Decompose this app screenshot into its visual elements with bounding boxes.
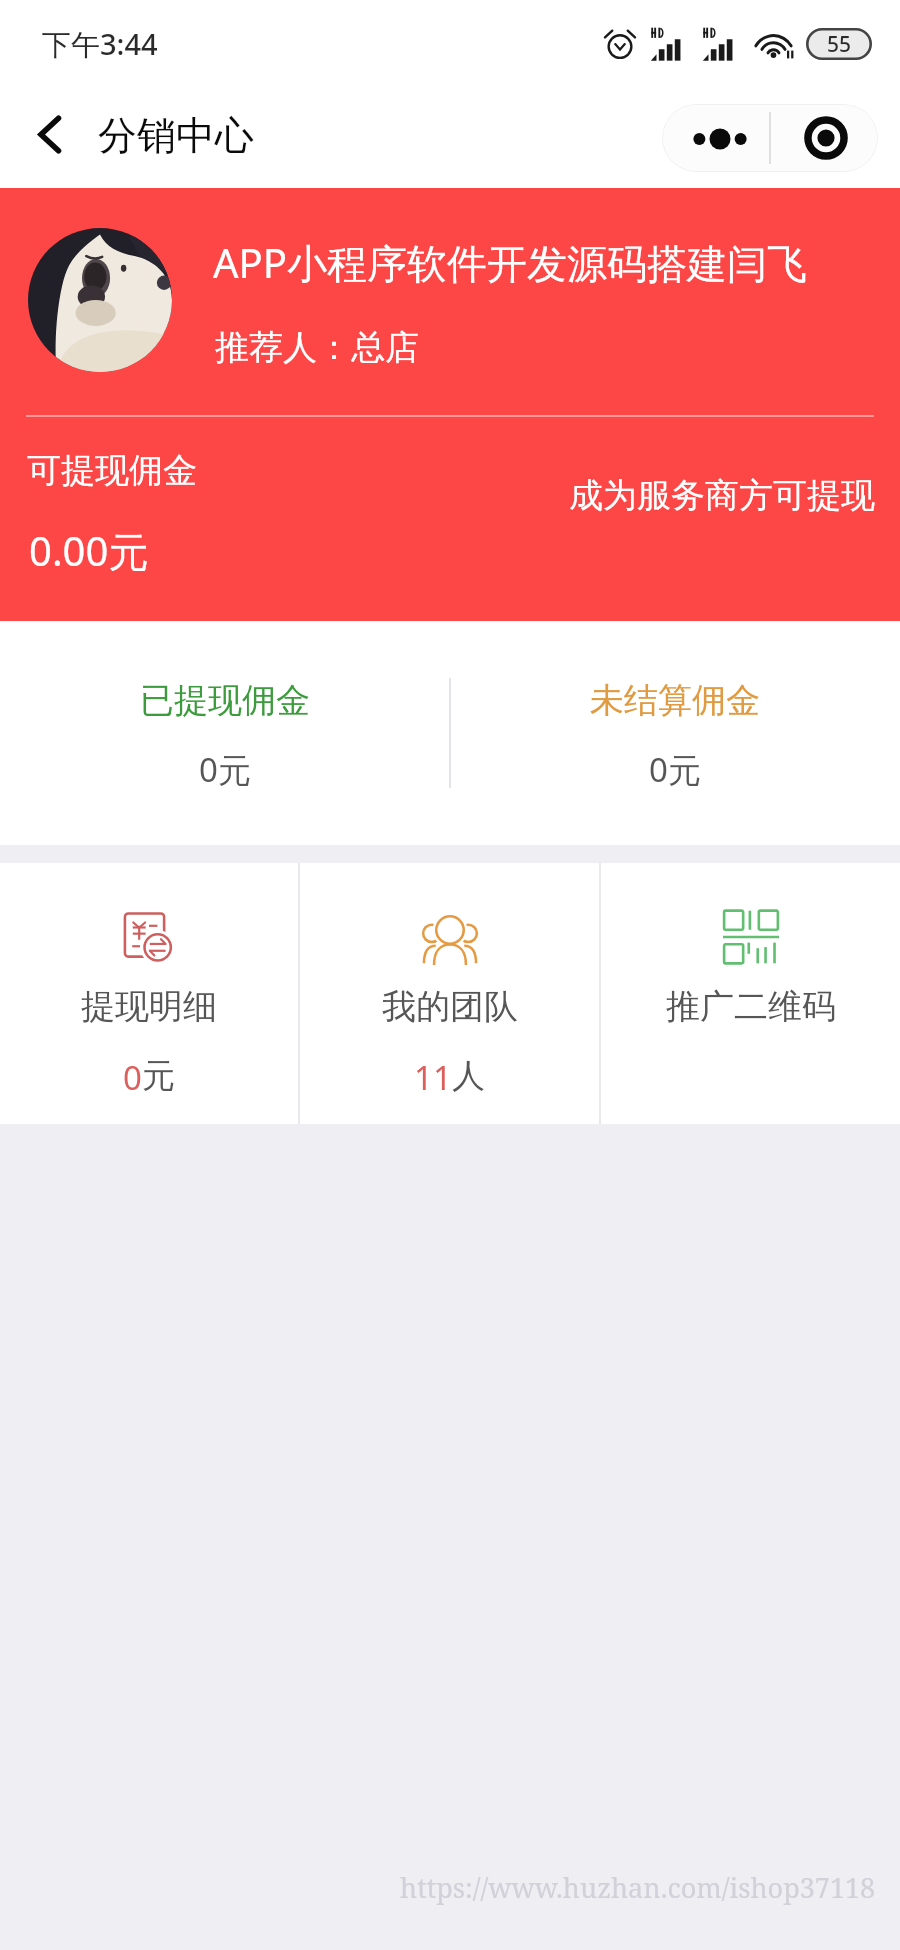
staticText: 元 (142, 1055, 175, 1097)
button[interactable]: 推广二维码 (601, 863, 900, 1124)
button[interactable]: 成为服务商方可提现 (569, 474, 875, 517)
staticText: 0.00元 (29, 523, 149, 578)
staticText: 11 (414, 1055, 452, 1100)
staticText: APP小程序软件开发源码搭建闫飞 (213, 235, 807, 290)
staticText: 下午3:44 (42, 24, 158, 64)
staticText: 提现明细 (81, 985, 217, 1028)
staticText: 推广二维码 (666, 985, 836, 1028)
button[interactable]: 已提现佣金 (0, 621, 450, 845)
button[interactable]: More options (662, 104, 769, 172)
staticText: 未结算佣金 (590, 679, 760, 722)
staticText: 我的团队 (382, 985, 518, 1028)
button[interactable]: 未结算佣金 (450, 621, 900, 845)
staticText: 可提现佣金 (27, 449, 197, 492)
staticText: 分销中心 (98, 111, 254, 160)
staticText: 0元 (649, 747, 701, 792)
staticText: 55 (827, 30, 852, 59)
staticText: 0元 (199, 747, 251, 792)
button[interactable]: 我的团队 (300, 863, 599, 1124)
staticText: 0 (123, 1055, 142, 1100)
button[interactable]: APP小程序软件开发源码搭建闫飞 (20, 214, 880, 386)
staticText: 已提现佣金 (140, 679, 310, 722)
staticText: 人 (452, 1055, 485, 1097)
staticText: https://www.huzhan.com/ishop37118 (400, 1869, 876, 1906)
button[interactable]: Back (18, 98, 80, 178)
staticText: 成为服务商方可提现 (569, 474, 875, 517)
button[interactable]: Close mini program (771, 104, 878, 172)
button[interactable]: 提现明细 (0, 863, 298, 1124)
staticText: 推荐人：总店 (215, 326, 419, 369)
